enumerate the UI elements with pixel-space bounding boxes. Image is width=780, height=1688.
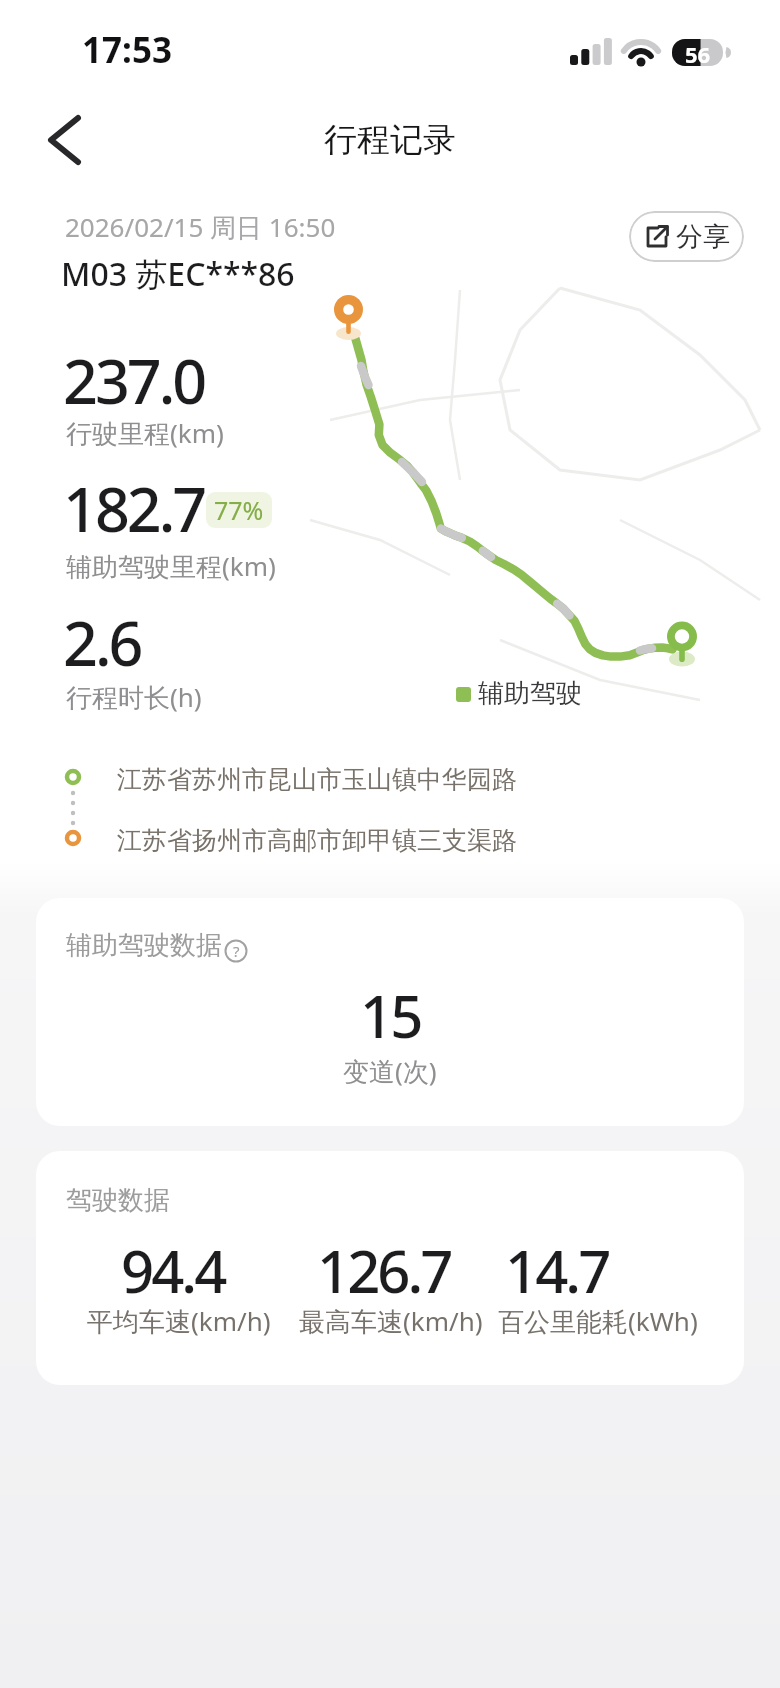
staticText: 行驶里程(km) xyxy=(66,415,224,451)
staticText: 237.0 xyxy=(63,339,205,422)
staticText: 2.6 xyxy=(63,601,141,684)
staticText: 182.7 xyxy=(63,467,205,550)
staticText: 行程时长(h) xyxy=(66,679,202,715)
staticText: 2026/02/15 周日 16:50 xyxy=(65,209,336,245)
staticText: 行程记录 xyxy=(324,119,456,161)
staticText: 分享 xyxy=(676,220,730,254)
staticText: 17:53 xyxy=(82,26,172,74)
staticText: 平均车速(km/h) xyxy=(87,1303,271,1339)
button[interactable]: 分享 xyxy=(629,211,744,262)
staticText: M03 苏EC***86 xyxy=(61,252,295,296)
staticText: 辅助驾驶 xyxy=(478,677,582,710)
staticText: 辅助驾驶里程(km) xyxy=(66,548,276,584)
staticText: 56 xyxy=(685,39,711,66)
staticText: 江苏省苏州市昆山市玉山镇中华园路 xyxy=(117,764,517,795)
staticText: 江苏省扬州市高邮市卸甲镇三支渠路 xyxy=(117,825,517,856)
button[interactable] xyxy=(30,105,100,175)
staticText: 百公里能耗(kWh) xyxy=(498,1303,698,1339)
staticText: 驾驶数据 xyxy=(66,1184,170,1217)
button[interactable]: ? xyxy=(224,939,248,963)
staticText: 94.4 xyxy=(121,1231,225,1310)
staticText: 15 xyxy=(360,976,421,1055)
staticText: 辅助驾驶数据 xyxy=(66,929,222,962)
staticText: 最高车速(km/h) xyxy=(299,1303,483,1339)
staticText: 变道(次) xyxy=(343,1053,437,1089)
staticText: 126.7 xyxy=(317,1231,451,1310)
staticText: 14.7 xyxy=(505,1231,609,1310)
staticText: 77% xyxy=(214,493,264,527)
staticText: ? xyxy=(233,941,240,961)
